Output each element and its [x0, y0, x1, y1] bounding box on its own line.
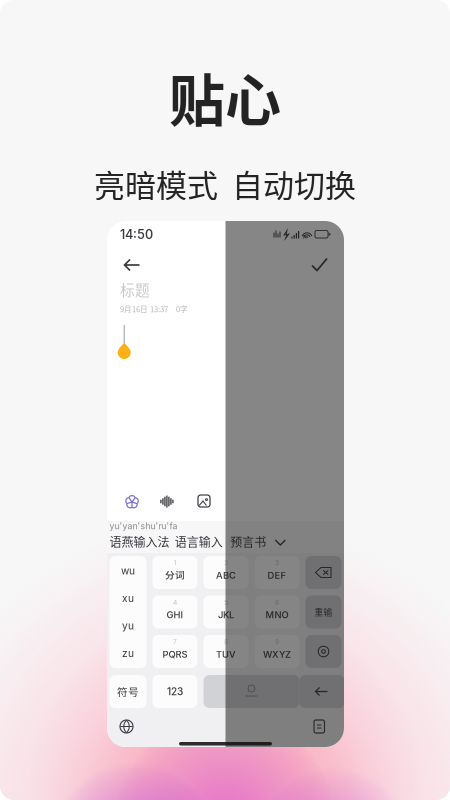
staticText: MNO	[265, 609, 288, 620]
staticText: 3	[275, 559, 279, 567]
staticText: 14:50	[120, 227, 153, 242]
staticText: WXYZ	[263, 649, 291, 660]
button[interactable]: zu	[109, 638, 146, 668]
button[interactable]: 3	[254, 556, 299, 589]
button[interactable]: xu	[109, 583, 146, 613]
staticText: 重输	[314, 606, 332, 618]
button[interactable]: yu	[109, 611, 146, 640]
button[interactable]: 8	[203, 635, 248, 668]
staticText: TUV	[216, 649, 236, 660]
staticText: 贴心	[169, 56, 281, 137]
staticText: zu	[122, 647, 134, 659]
button[interactable]: 5	[203, 595, 248, 628]
staticText: 5	[224, 598, 228, 606]
staticText: 9	[275, 638, 279, 646]
button[interactable]: 123	[152, 675, 197, 708]
button[interactable]: 1	[152, 556, 197, 589]
button[interactable]: 预言书	[230, 533, 268, 550]
button[interactable]: 6	[254, 595, 299, 628]
staticText: 预言书	[230, 533, 266, 550]
button[interactable]: Delete	[305, 556, 341, 589]
button[interactable]: 7	[152, 635, 197, 668]
staticText: 语言输入	[175, 533, 223, 550]
staticText: 2	[224, 559, 228, 567]
button[interactable]: Switch Chinese English	[299, 675, 344, 708]
button[interactable]: Done	[305, 251, 333, 279]
staticText: 符号	[117, 684, 139, 699]
button[interactable]: 重输	[305, 595, 341, 628]
button[interactable]: Voice input	[160, 495, 174, 508]
button[interactable]: Switch keyboard	[120, 720, 133, 733]
button[interactable]: Insert image	[198, 495, 210, 507]
button[interactable]: 9	[254, 635, 299, 668]
button[interactable]: 语燕输入法	[109, 533, 171, 550]
button[interactable]: Space	[203, 675, 299, 708]
staticText: 语燕输入法	[109, 533, 169, 550]
button[interactable]: Return	[302, 675, 340, 708]
staticText: 123	[167, 685, 183, 698]
staticText: xu	[122, 592, 134, 604]
staticText: 亮暗模式 自动切换	[94, 161, 356, 206]
button[interactable]: Show more candidates	[274, 535, 287, 549]
staticText: 9月16日 13:37 0字	[120, 303, 188, 314]
staticText: yu'yan'shu'ru'fa	[109, 521, 177, 531]
button[interactable]: 2	[203, 556, 248, 589]
staticText: DEF	[267, 570, 286, 581]
button[interactable]: Assistant	[125, 495, 139, 509]
staticText: ABC	[216, 570, 236, 581]
staticText: 7	[173, 638, 177, 646]
button[interactable]: 4	[152, 595, 197, 628]
button[interactable]: Back	[118, 251, 146, 279]
staticText: PQRS	[162, 649, 187, 660]
staticText: 中	[307, 683, 319, 700]
staticText: 4	[173, 598, 177, 606]
staticText: JKL	[218, 609, 234, 620]
staticText: yu	[122, 620, 134, 632]
button[interactable]: 符号	[109, 675, 146, 708]
staticText: GHI	[166, 609, 183, 620]
staticText: 8	[224, 638, 228, 646]
staticText: 标题	[120, 278, 150, 300]
button[interactable]: Clipboard	[314, 720, 324, 733]
button[interactable]: 语言输入	[175, 533, 225, 550]
button[interactable]: wu	[109, 556, 146, 585]
staticText: 分词	[165, 567, 185, 581]
staticText: wu	[121, 565, 135, 577]
staticText: 6	[275, 598, 279, 606]
button[interactable]: At sign	[305, 635, 341, 668]
staticText: 1	[173, 559, 176, 567]
